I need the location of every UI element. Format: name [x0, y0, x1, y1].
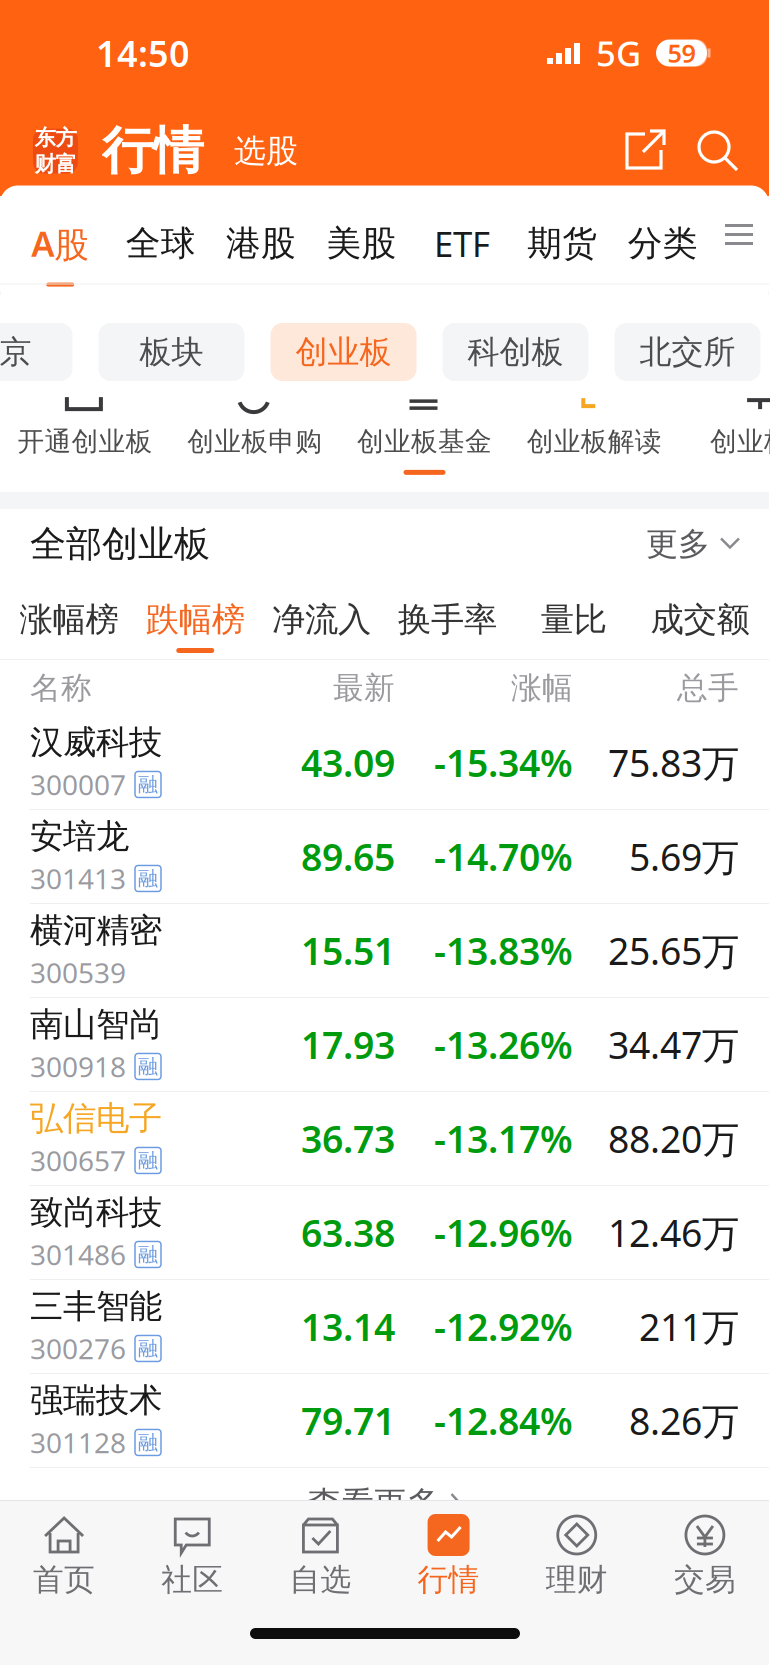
staticText: 北交所	[639, 332, 735, 372]
button[interactable]: 涨幅榜	[6, 579, 132, 659]
staticText: 跌幅榜	[146, 599, 245, 640]
staticText: 融	[138, 1148, 158, 1173]
button[interactable]: 深京	[0, 323, 72, 381]
staticText: 全球	[126, 222, 196, 265]
button[interactable]: 跌幅榜	[132, 579, 258, 659]
staticText: 科创板	[467, 332, 563, 372]
staticText: 自选	[289, 1561, 351, 1599]
button[interactable]: 开通创业板	[0, 392, 170, 492]
button[interactable]: 首页	[0, 1501, 128, 1606]
button[interactable]: 交易	[641, 1501, 769, 1606]
button[interactable]: 查看更多	[0, 1468, 769, 1540]
staticText: 75.83万	[608, 738, 739, 787]
button[interactable]: 量比	[511, 579, 637, 659]
staticText: 融	[138, 1242, 158, 1267]
staticText: ETF	[434, 220, 490, 266]
button[interactable]: 创业板基金	[340, 392, 509, 492]
button[interactable]: 行情	[384, 1501, 513, 1606]
button[interactable]: 致尚科技	[0, 1186, 769, 1280]
button[interactable]: 横河精密	[0, 904, 769, 998]
staticText: 17.93	[301, 1020, 395, 1069]
staticText: 更多	[646, 524, 710, 564]
staticText: -13.26%	[434, 1020, 573, 1069]
staticText: 汉威科技	[30, 722, 162, 763]
staticText: 34.47万	[608, 1020, 739, 1069]
staticText: 净流入	[272, 599, 371, 640]
staticText: 三丰智能	[30, 1286, 162, 1327]
staticText: 300539	[30, 954, 126, 991]
button[interactable]: 更多分类	[713, 185, 765, 283]
staticText: 301486	[30, 1236, 126, 1273]
button[interactable]: 期货	[512, 185, 612, 283]
staticText: A股	[31, 220, 89, 267]
button[interactable]: 理财	[513, 1501, 641, 1606]
button[interactable]: 搜索	[693, 126, 743, 176]
staticText: 300657	[30, 1142, 126, 1179]
staticText: 25.65万	[608, 926, 739, 975]
button[interactable]: ETF	[412, 185, 512, 283]
button[interactable]: 换手率	[384, 579, 511, 659]
button[interactable]: 港股	[211, 185, 311, 283]
staticText: 深京	[0, 332, 31, 372]
button[interactable]: 分类	[613, 185, 713, 283]
button[interactable]: 强瑞技术	[0, 1374, 769, 1468]
button[interactable]: 三丰智能	[0, 1280, 769, 1374]
staticText: 分类	[628, 222, 698, 265]
staticText: 300918	[30, 1048, 126, 1085]
button[interactable]: 创业板机	[679, 392, 770, 492]
staticText: 63.38	[301, 1208, 395, 1257]
button[interactable]: 科创板	[442, 323, 588, 381]
button[interactable]: 成交额	[637, 579, 763, 659]
button[interactable]: 板块	[98, 323, 244, 381]
staticText: 创业板申购	[187, 425, 322, 458]
staticText: 融	[138, 772, 158, 797]
staticText: 13.14	[301, 1302, 395, 1351]
staticText: 14:50	[96, 29, 190, 77]
button[interactable]: 更多	[646, 524, 739, 564]
staticText: 融	[138, 1336, 158, 1361]
staticText: 涨幅榜	[20, 599, 119, 640]
button[interactable]: 北交所	[614, 323, 760, 381]
staticText: 横河精密	[30, 910, 162, 951]
staticText: 期货	[527, 222, 597, 265]
staticText: -12.96%	[434, 1208, 573, 1257]
staticText: 交易	[674, 1561, 736, 1599]
staticText: 最新	[333, 669, 395, 707]
button[interactable]: 分享	[621, 126, 671, 176]
staticText: 融	[138, 866, 158, 891]
staticText: 量比	[541, 599, 607, 640]
staticText: 211万	[639, 1302, 739, 1351]
staticText: 理财	[546, 1561, 608, 1599]
staticText: 89.65	[301, 832, 395, 881]
staticText: -13.83%	[434, 926, 573, 975]
button[interactable]: 创业板申购	[170, 392, 340, 492]
staticText: 15.51	[301, 926, 395, 975]
button[interactable]: A股	[10, 185, 110, 283]
staticText: 财富	[34, 151, 76, 177]
button[interactable]: 安培龙	[0, 810, 769, 904]
staticText: 300276	[30, 1330, 126, 1367]
staticText: 融	[138, 1430, 158, 1455]
staticText: 致尚科技	[30, 1192, 162, 1233]
button[interactable]: 弘信电子	[0, 1092, 769, 1186]
staticText: 首页	[33, 1561, 95, 1599]
staticText: -12.84%	[434, 1396, 573, 1445]
staticText: 选股	[234, 131, 298, 171]
button[interactable]: 社区	[128, 1501, 256, 1606]
button[interactable]: 创业板解读	[509, 392, 679, 492]
staticText: 36.73	[301, 1114, 395, 1163]
staticText: 12.46万	[608, 1208, 739, 1257]
button[interactable]: 南山智尚	[0, 998, 769, 1092]
staticText: 5.69万	[629, 832, 739, 881]
staticText: 强瑞技术	[30, 1380, 162, 1421]
staticText: 301413	[30, 860, 126, 897]
staticText: 创业板基金	[357, 425, 492, 458]
button[interactable]: 创业板	[270, 323, 416, 381]
button[interactable]: 美股	[311, 185, 412, 283]
button[interactable]: 汉威科技	[0, 716, 769, 810]
staticText: 300007	[30, 766, 126, 803]
button[interactable]: 全球	[110, 185, 211, 283]
button[interactable]: 净流入	[258, 579, 384, 659]
button[interactable]: 自选	[256, 1501, 384, 1606]
staticText: 43.09	[301, 738, 395, 787]
